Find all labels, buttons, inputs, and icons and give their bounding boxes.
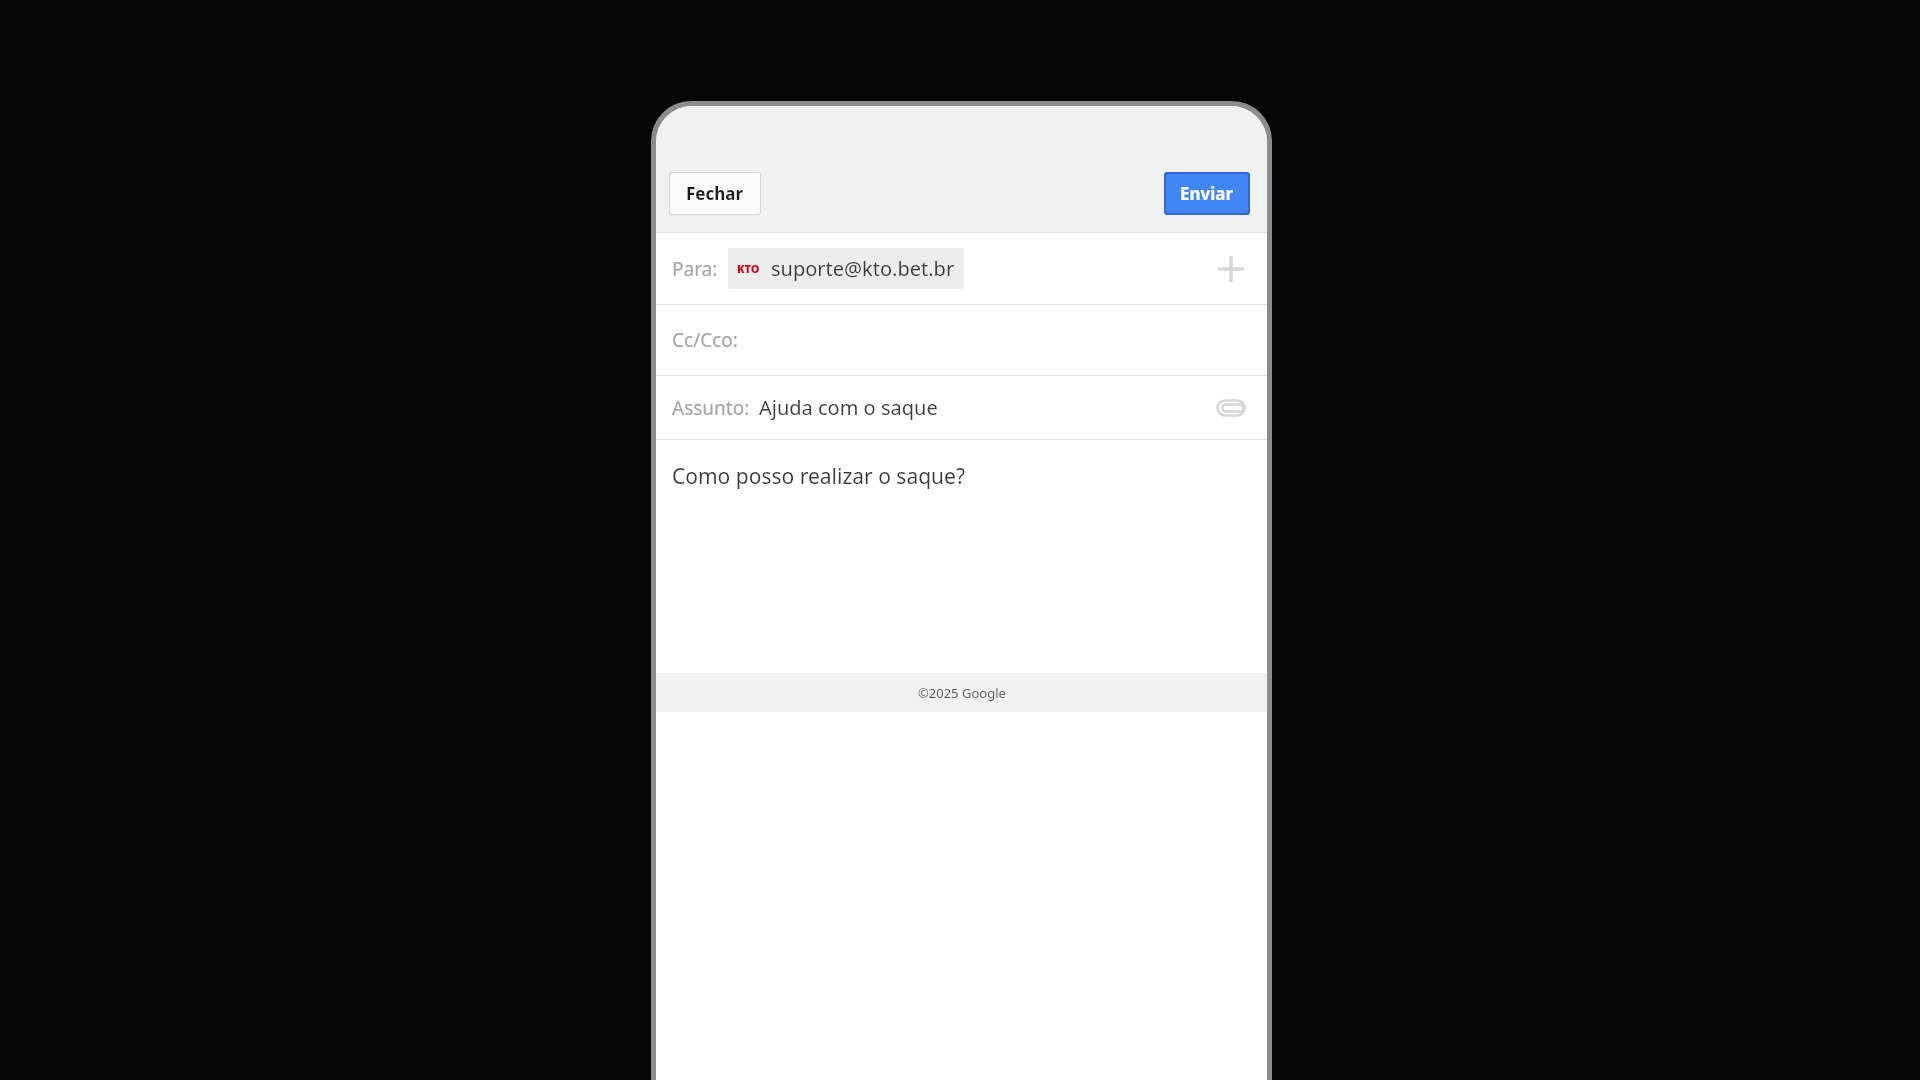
staticText: Enviar [1180,182,1234,205]
button[interactable]: Assunto: [656,376,1267,439]
staticText: Como posso realizar o saque? [672,462,966,491]
button[interactable]: Cc/Cco: [656,305,1267,375]
staticText: Ajuda com o saque [759,394,938,421]
button[interactable]: Adicionar destinatário [1207,245,1255,293]
staticText: ©2025 Google [918,684,1006,702]
staticText: Fechar [686,182,744,205]
button[interactable]: Fechar [670,173,760,214]
button[interactable]: Para: [656,233,1267,304]
staticText: suporte@kto.bet.br [771,255,955,282]
button[interactable]: Anexar arquivo [1207,384,1255,432]
staticText: Cc/Cco: [672,327,738,353]
staticText: KTO [737,261,760,276]
staticText: Para: [672,256,718,282]
staticText: Assunto: [672,395,750,421]
button[interactable]: Enviar [1166,174,1248,213]
